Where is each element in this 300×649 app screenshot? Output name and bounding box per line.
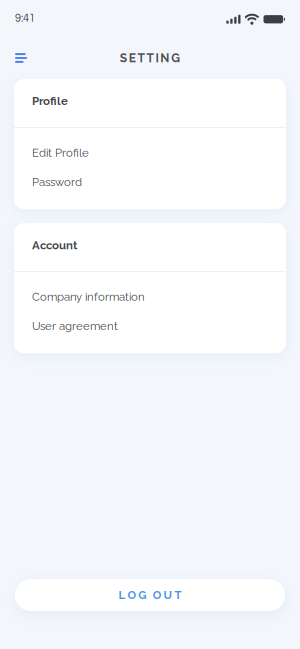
staticText: Company information	[32, 290, 145, 303]
staticText: O	[153, 588, 162, 602]
staticText: Account	[32, 238, 77, 252]
staticText: T	[146, 51, 153, 65]
staticText: U	[164, 588, 173, 602]
staticText: G	[138, 588, 146, 602]
staticText: G	[171, 51, 180, 65]
staticText: N	[160, 51, 169, 65]
staticText: O	[127, 588, 136, 602]
staticText: T	[138, 51, 145, 65]
staticText: 9:41	[15, 13, 35, 24]
button[interactable]: Password	[32, 175, 286, 189]
staticText: I	[155, 51, 158, 65]
button[interactable]: Edit Profile	[32, 146, 286, 159]
button[interactable]: L	[15, 579, 285, 611]
staticText: L	[119, 588, 126, 602]
staticText: Password	[32, 175, 82, 189]
staticText: User agreement	[32, 319, 118, 333]
staticText: Profile	[32, 94, 68, 108]
staticText: Edit Profile	[32, 146, 89, 159]
button[interactable]: Company information	[32, 290, 286, 303]
button[interactable]: User agreement	[32, 319, 286, 333]
button[interactable]: Menu	[0, 44, 27, 70]
staticText: T	[174, 588, 181, 602]
staticText: E	[129, 51, 136, 65]
staticText: S	[120, 51, 127, 65]
